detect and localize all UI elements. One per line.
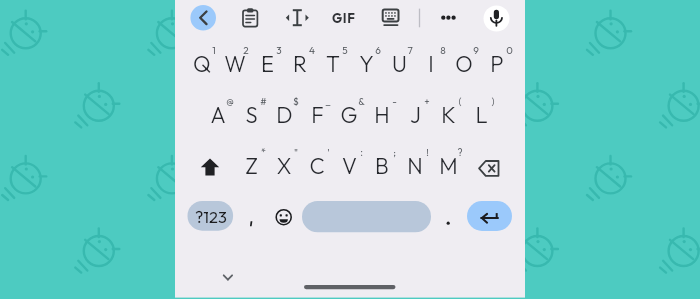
staticText: 0 [506, 44, 513, 57]
staticText: Q [193, 50, 211, 78]
staticText: X [276, 152, 292, 180]
button[interactable]: Q [185, 44, 218, 86]
staticText: " [294, 146, 298, 159]
button[interactable]: J [399, 92, 432, 134]
staticText: GIF [332, 10, 356, 26]
staticText: R [293, 50, 307, 78]
button[interactable]: Emoji [271, 201, 297, 231]
button[interactable]: R [284, 44, 317, 86]
button[interactable]: I [415, 44, 448, 86]
staticText: : [360, 146, 363, 159]
button[interactable]: C [300, 145, 333, 187]
staticText: _ [325, 95, 331, 108]
staticText: H [374, 101, 390, 129]
staticText: Z [245, 152, 258, 180]
button[interactable]: K [431, 92, 464, 134]
staticText: * [261, 146, 266, 159]
button[interactable]: Backspace [464, 145, 513, 187]
staticText: S [245, 101, 258, 129]
button[interactable]: M [431, 145, 464, 187]
staticText: 1 [212, 44, 216, 57]
staticText: ! [426, 146, 429, 159]
button[interactable]: P [481, 44, 514, 86]
button[interactable]: Hide keyboard [216, 266, 240, 288]
button[interactable]: X [267, 145, 300, 187]
staticText: F [311, 101, 324, 129]
button[interactable]: A [202, 92, 235, 134]
button[interactable]: D [267, 92, 300, 134]
button[interactable]: Shift [185, 145, 234, 187]
staticText: 5 [342, 44, 348, 57]
button[interactable]: U [382, 44, 415, 86]
button[interactable]: G [333, 92, 366, 134]
staticText: I [428, 50, 434, 78]
staticText: L [475, 101, 488, 129]
staticText: # [260, 95, 267, 108]
button[interactable]: W [218, 44, 251, 86]
button[interactable]: H [366, 92, 399, 134]
button[interactable]: Z [235, 145, 268, 187]
staticText: ( [458, 95, 462, 108]
button[interactable]: E [251, 44, 284, 86]
staticText: 2 [243, 44, 249, 57]
button[interactable]: Space [302, 201, 431, 232]
staticText: ; [393, 146, 396, 159]
button[interactable]: Keyboard settings [378, 5, 403, 30]
staticText: J [410, 101, 421, 129]
staticText: & [358, 95, 365, 108]
button[interactable]: Clipboard [238, 5, 263, 30]
button[interactable]: Symbols [188, 201, 234, 231]
staticText: 6 [375, 44, 381, 57]
staticText: 8 [440, 44, 446, 57]
button[interactable]: Enter [467, 201, 512, 231]
staticText: $ [293, 95, 299, 108]
staticText: 9 [473, 44, 479, 57]
staticText: ) [491, 95, 495, 108]
staticText: B [375, 152, 389, 180]
staticText: + [424, 95, 430, 108]
staticText: N [407, 152, 423, 180]
button[interactable]: Back [190, 5, 216, 31]
button[interactable]: T [317, 44, 350, 86]
staticText: W [224, 50, 246, 78]
button[interactable]: L [464, 92, 497, 134]
staticText: V [342, 152, 357, 180]
staticText: E [261, 50, 274, 78]
staticText: G [340, 101, 358, 129]
button[interactable]: S [235, 92, 268, 134]
staticText: 3 [276, 44, 282, 57]
staticText: ?123 [195, 206, 227, 227]
button[interactable]: Y [349, 44, 382, 86]
staticText: A [210, 101, 226, 129]
button[interactable]: F [300, 92, 333, 134]
button[interactable]: Comma [240, 201, 265, 231]
button[interactable]: V [333, 145, 366, 187]
button[interactable]: Text editing [285, 5, 310, 30]
button[interactable]: More options [436, 5, 461, 30]
staticText: ' [327, 146, 330, 159]
button[interactable]: B [366, 145, 399, 187]
staticText: K [441, 101, 456, 129]
staticText: @ [226, 95, 234, 108]
button[interactable]: Voice input [484, 6, 510, 32]
staticText: D [276, 101, 293, 129]
staticText: C [309, 152, 325, 180]
button[interactable]: Period [436, 201, 461, 231]
staticText: - [392, 95, 397, 108]
staticText: Y [359, 50, 374, 78]
staticText: 7 [407, 44, 413, 57]
staticText: U [392, 50, 407, 78]
staticText: T [326, 50, 340, 78]
button[interactable]: N [399, 145, 432, 187]
staticText: O [455, 50, 473, 78]
staticText: P [490, 50, 504, 78]
staticText: M [439, 152, 458, 180]
button[interactable]: O [448, 44, 481, 86]
staticText: ? [457, 146, 463, 159]
staticText: 4 [309, 44, 315, 57]
button[interactable]: GIF [331, 5, 356, 30]
